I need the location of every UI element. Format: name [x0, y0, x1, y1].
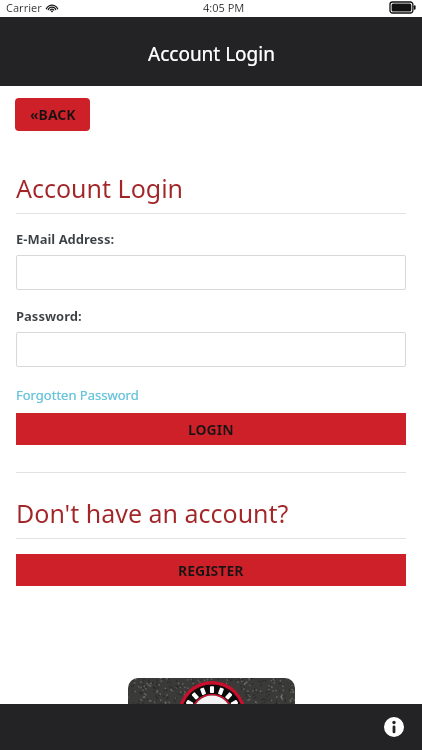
button[interactable]: [16, 255, 406, 290]
staticText: LOGIN: [188, 420, 234, 439]
button[interactable]: [16, 332, 406, 367]
button[interactable]: LOGIN: [16, 413, 406, 445]
staticText: Carrier: [6, 0, 42, 15]
button[interactable]: Forgotten Password: [16, 386, 139, 404]
staticText: «BACK: [30, 105, 76, 124]
button[interactable]: REGISTER: [16, 554, 406, 586]
staticText: Account Login: [148, 41, 275, 67]
staticText: REGISTER: [178, 561, 244, 580]
button[interactable]: «BACK: [15, 98, 90, 131]
staticText: Forgotten Password: [16, 386, 139, 404]
staticText: Password:: [16, 307, 82, 325]
staticText: Don't have an account?: [16, 496, 289, 530]
staticText: E-Mail Address:: [16, 230, 115, 248]
staticText: Account Login: [16, 171, 184, 205]
button[interactable]: Information: [378, 711, 410, 743]
staticText: 4:05 PM: [203, 0, 245, 15]
